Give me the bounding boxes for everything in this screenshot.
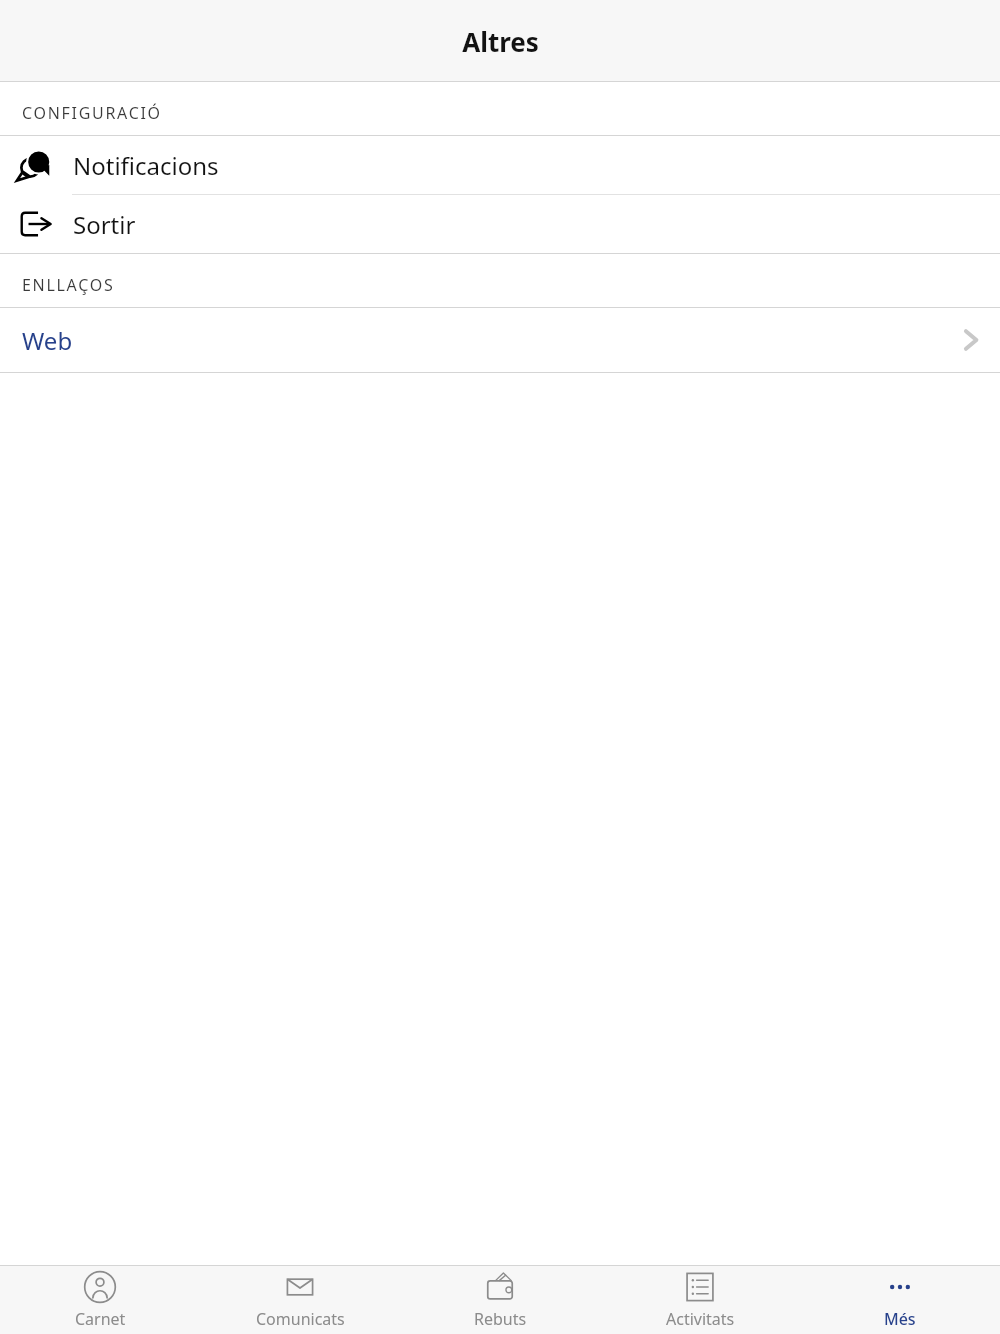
staticText: Sortir — [73, 208, 136, 241]
button[interactable]: Carnet — [0, 1266, 200, 1334]
button[interactable]: Activitats — [600, 1266, 800, 1334]
staticText: Comunicats — [256, 1308, 345, 1330]
staticText: Més — [884, 1308, 916, 1330]
staticText: Notificacions — [73, 149, 219, 182]
staticText: ENLLAÇOS — [22, 274, 115, 296]
staticText: Web — [22, 324, 73, 357]
button[interactable]: Notifications — [0, 136, 1000, 195]
other: Log out — [19, 207, 53, 241]
button[interactable]: Log out — [0, 195, 1000, 253]
staticText: Carnet — [75, 1308, 126, 1330]
button[interactable]: Comunicats — [200, 1266, 400, 1334]
staticText: Rebuts — [474, 1308, 527, 1330]
staticText: CONFIGURACIÓ — [22, 102, 162, 124]
button[interactable]: Rebuts — [400, 1266, 600, 1334]
button[interactable]: Més — [800, 1266, 1000, 1334]
other: Notifications — [19, 148, 53, 182]
staticText: Activitats — [666, 1308, 735, 1330]
staticText: Altres — [462, 24, 539, 59]
button[interactable]: Web — [0, 308, 1000, 372]
